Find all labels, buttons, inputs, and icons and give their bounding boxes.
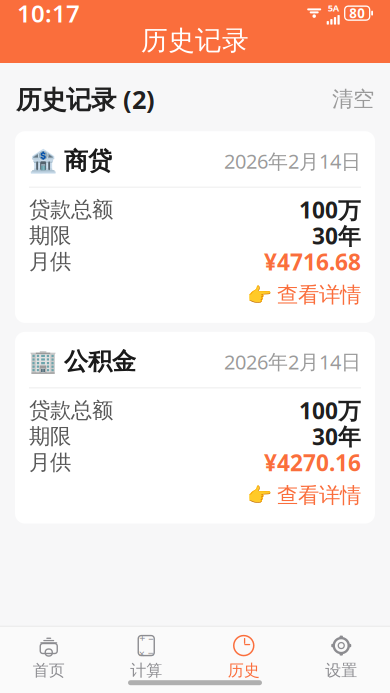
staticText: 历史 [228, 661, 260, 680]
staticText: 查看详情 [277, 482, 361, 509]
staticText: 🏦 [29, 148, 57, 174]
staticText: ¥4716.68 [264, 247, 361, 277]
staticText: 公积金 [64, 347, 136, 376]
staticText: 计算 [130, 661, 162, 680]
staticText: 历史记录 (2) [16, 82, 155, 116]
button[interactable]: 清空 [314, 80, 374, 118]
staticText: 5A [328, 2, 339, 14]
staticText: 🏢 [29, 349, 57, 375]
staticText: 设置 [325, 661, 357, 680]
staticText: 100万 [299, 395, 361, 425]
staticText: 月供 [29, 449, 71, 475]
staticText: 首页 [33, 661, 65, 680]
staticText: 2026年2月14日 [224, 148, 361, 174]
staticText: 100万 [299, 195, 361, 225]
button[interactable]: 设置 [292, 635, 390, 680]
staticText: 10:17 [17, 0, 80, 29]
staticText: 30年 [312, 221, 361, 251]
staticText: + [139, 630, 145, 645]
staticText: – [148, 630, 153, 645]
staticText: 80 [349, 4, 365, 22]
button[interactable]: 首页 [0, 635, 97, 680]
button[interactable]: + [97, 635, 195, 680]
staticText: 👉 [247, 484, 272, 507]
button[interactable]: 历史 [195, 635, 292, 680]
button[interactable]: 🏢 [0, 332, 390, 524]
staticText: 月供 [29, 249, 71, 275]
button[interactable]: 🏦 [0, 131, 390, 323]
staticText: 👉 [247, 283, 272, 306]
staticText: 30年 [312, 421, 361, 451]
staticText: 清空 [332, 86, 374, 112]
staticText: 贷款总额 [29, 197, 113, 223]
staticText: 期限 [29, 223, 71, 249]
staticText: = [148, 647, 154, 661]
staticText: ¥4270.16 [264, 447, 361, 477]
staticText: 历史记录 [141, 24, 249, 57]
staticText: 查看详情 [277, 282, 361, 308]
staticText: 商贷 [64, 146, 112, 176]
staticText: 贷款总额 [29, 397, 113, 423]
staticText: 期限 [29, 423, 71, 449]
staticText: × [139, 647, 145, 661]
staticText: 2026年2月14日 [224, 348, 361, 375]
